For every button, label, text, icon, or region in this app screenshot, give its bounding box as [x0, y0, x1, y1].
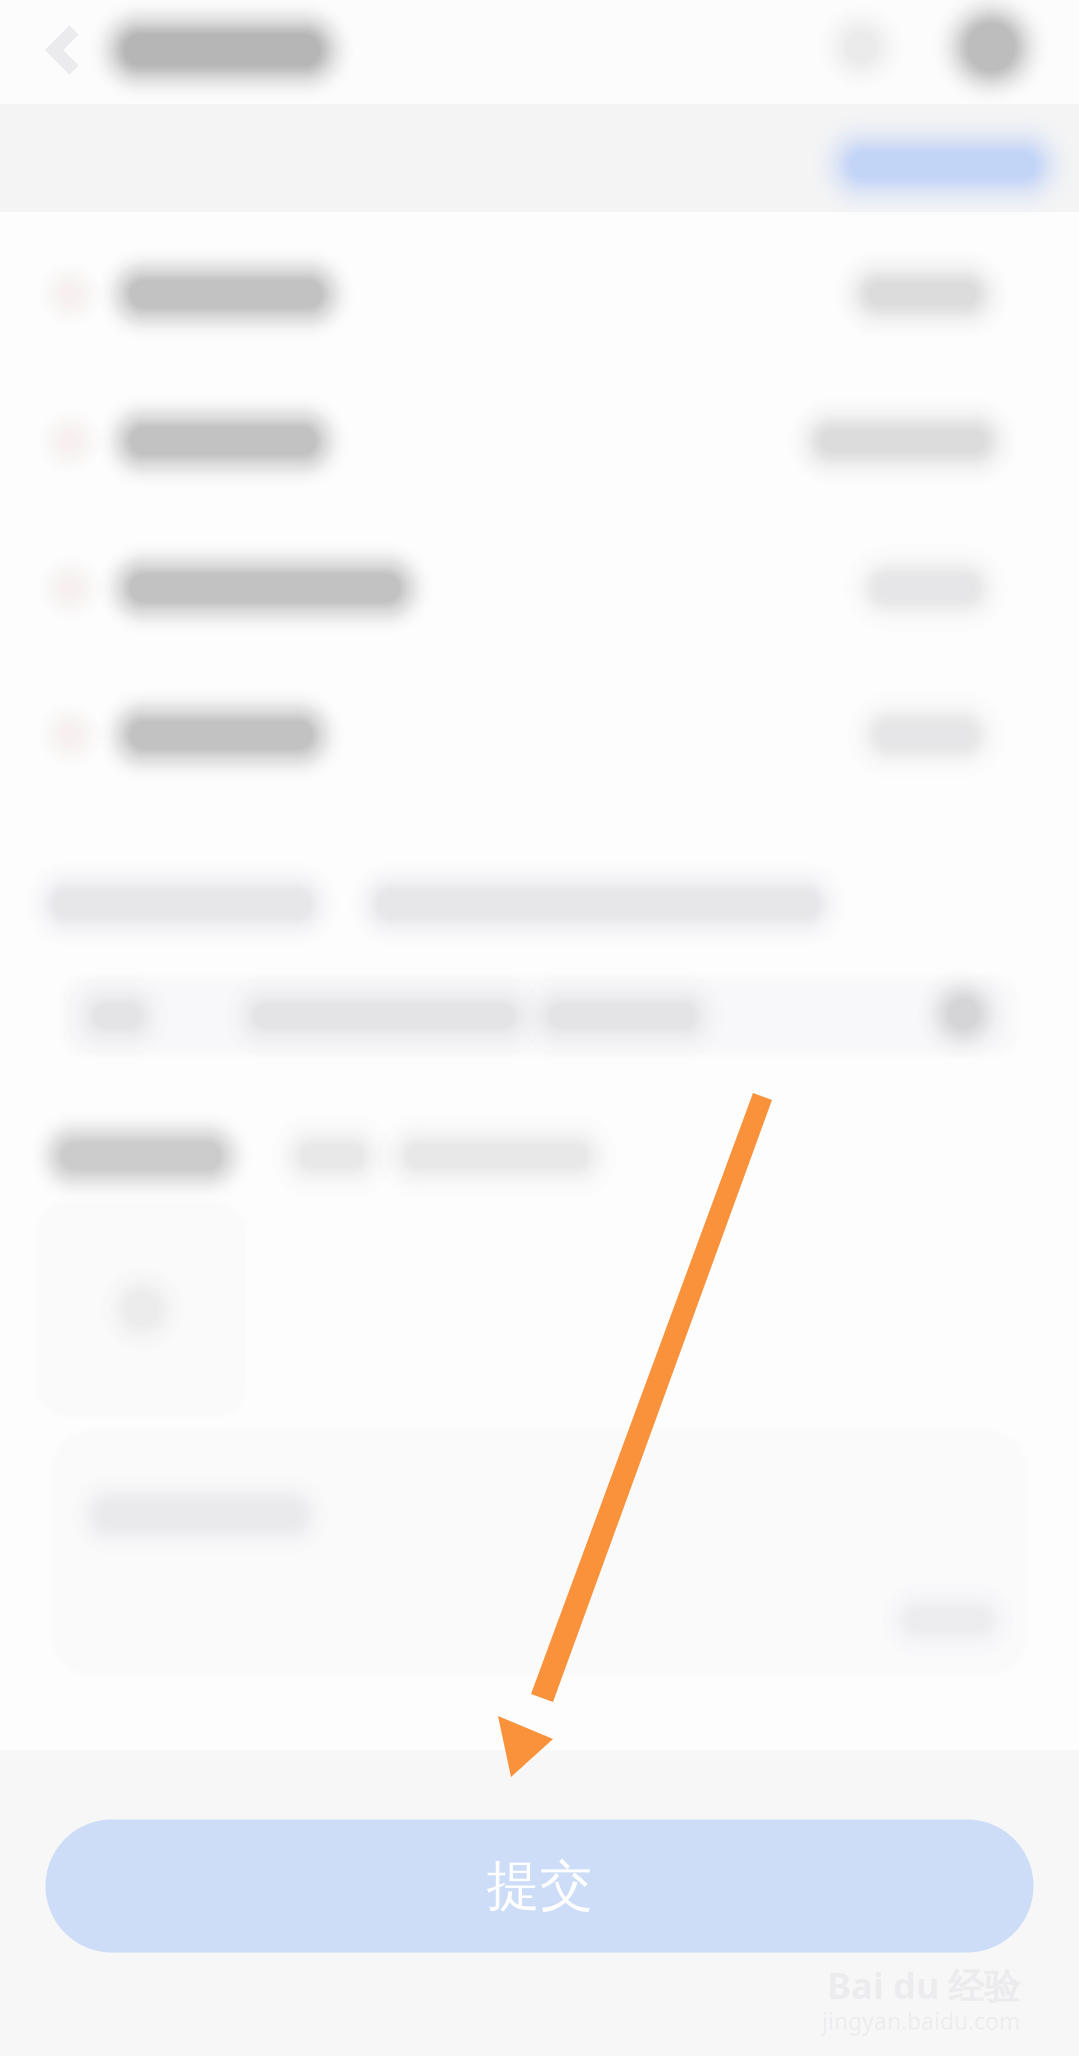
- staticText: Bai du 经验: [827, 1961, 1020, 2009]
- button[interactable]: Scan: [900, 951, 1026, 1077]
- staticText: 提交: [486, 1853, 592, 1919]
- staticText: jingyan.baidu.com: [822, 2006, 1020, 2036]
- button[interactable]: 提交: [45, 1819, 1033, 1952]
- button[interactable]: Account: [919, 0, 1063, 119]
- button[interactable]: [802, 104, 1079, 226]
- button[interactable]: Upload image: [0, 1159, 292, 1459]
- button[interactable]: Search: [798, 0, 924, 110]
- button[interactable]: Back: [20, 4, 112, 96]
